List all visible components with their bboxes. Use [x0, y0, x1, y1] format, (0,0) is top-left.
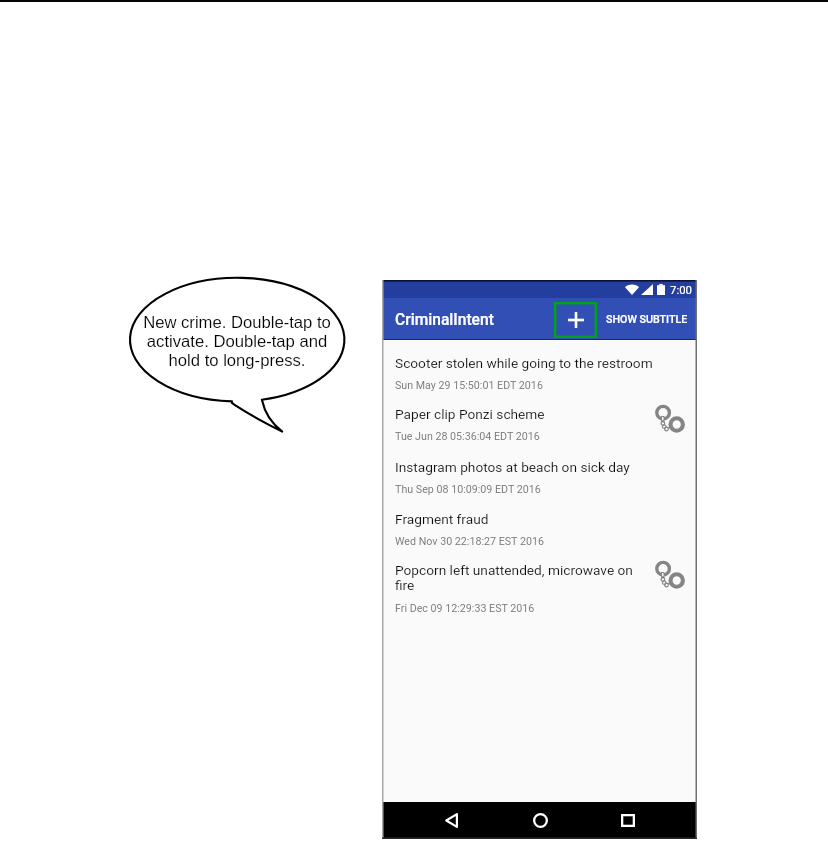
- staticText: Scooter stolen while going to the restro…: [395, 355, 653, 371]
- staticText: Thu Sep 08 10:09:09 EDT 2016: [395, 483, 541, 496]
- button[interactable]: Recents: [606, 802, 650, 839]
- staticText: New crime. Double-tap to activate. Doubl…: [137, 313, 337, 370]
- staticText: Fri Dec 09 12:29:33 EST 2016: [395, 602, 535, 615]
- staticText: Instagram photos at beach on sick day: [395, 459, 630, 475]
- staticText: Paper clip Ponzi scheme: [395, 406, 545, 422]
- button[interactable]: Popcorn left unattended, microwave on fi…: [382, 551, 697, 617]
- staticText: Sun May 29 15:50:01 EDT 2016: [395, 379, 543, 392]
- staticText: Tue Jun 28 05:36:04 EDT 2016: [395, 430, 540, 443]
- button[interactable]: New crime: [554, 302, 597, 338]
- button[interactable]: Instagram photos at beach on sick day: [382, 448, 697, 499]
- button[interactable]: Scooter stolen while going to the restro…: [382, 344, 697, 395]
- staticText: Fragment fraud: [395, 511, 489, 527]
- button[interactable]: Fragment fraud: [382, 500, 697, 551]
- staticText: Popcorn left unattended, microwave on fi…: [395, 562, 654, 594]
- staticText: SHOW SUBTITLE: [606, 313, 688, 326]
- button[interactable]: SHOW SUBTITLE: [597, 305, 697, 334]
- staticText: Wed Nov 30 22:18:27 EST 2016: [395, 535, 544, 548]
- button[interactable]: Back: [429, 802, 473, 839]
- staticText: CriminalIntent: [395, 311, 494, 329]
- button[interactable]: Paper clip Ponzi scheme: [382, 395, 697, 446]
- button[interactable]: Home: [518, 802, 562, 839]
- staticText: 7:00: [670, 283, 692, 296]
